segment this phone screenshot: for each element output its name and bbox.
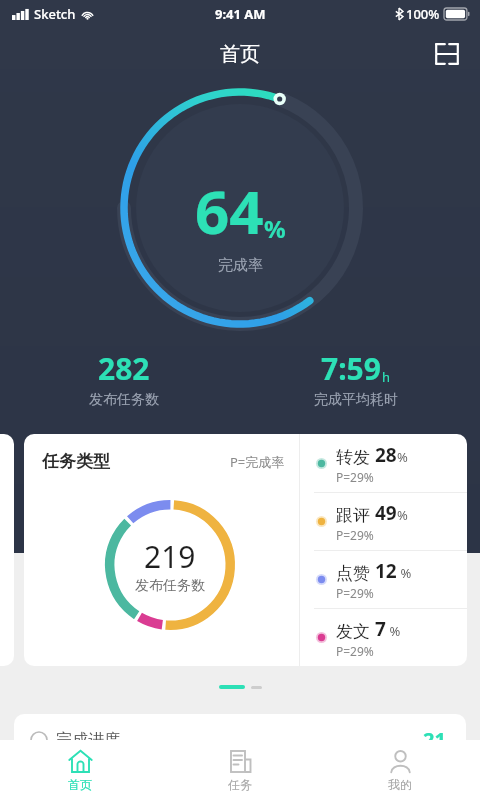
staticText: % [397,506,408,524]
staticText: 跟评 [336,505,370,526]
button[interactable]: 点赞 [316,551,467,608]
button[interactable]: 转发 [316,434,467,492]
button[interactable]: 发文 [316,609,467,666]
button[interactable]: 跟评 [316,493,467,550]
staticText: 转发 [336,447,370,468]
staticText: % [397,448,408,466]
staticText: P=29% [336,469,374,485]
staticText: 发布任务数 [135,577,205,595]
staticText: P=29% [336,527,374,543]
staticText: 9:41 AM [215,5,266,23]
button[interactable]: 首页 [0,740,160,800]
staticText: 完成率 [218,256,263,275]
button[interactable]: 任务 [160,740,320,800]
staticText: 12 [375,558,397,584]
staticText: 完成平均耗时 [314,391,398,409]
staticText: % [264,212,286,245]
staticText: % [397,564,412,582]
staticText: P=29% [336,585,374,601]
staticText: 我的 [388,777,412,792]
staticText: h [382,368,391,386]
staticText: Sketch [34,5,76,23]
button[interactable]: 我的 [320,740,480,800]
staticText: 任务类型 [42,451,110,472]
staticText: 发布任务数 [89,391,159,409]
staticText: 首页 [68,777,92,792]
staticText: 282 [98,348,150,389]
staticText: P=29% [336,643,374,659]
staticText: 任务 [228,777,252,792]
button[interactable]: Scan QR code [431,38,463,70]
staticText: 219 [144,536,196,577]
staticText: 21 [423,726,446,753]
staticText: P=完成率 [230,453,285,471]
staticText: 首页 [220,42,260,67]
staticText: 49 [375,500,397,526]
staticText: 28 [375,442,397,468]
staticText: 完成进度 [56,730,120,750]
staticText: 发文 [336,621,370,642]
staticText: 64 [195,170,264,252]
staticText: 7:59 [321,348,381,389]
staticText: 100% [406,5,440,23]
staticText: 点赞 [336,563,370,584]
staticText: 7 [375,616,386,642]
button[interactable]: 任务类型 [24,434,467,666]
staticText: % [386,622,401,640]
